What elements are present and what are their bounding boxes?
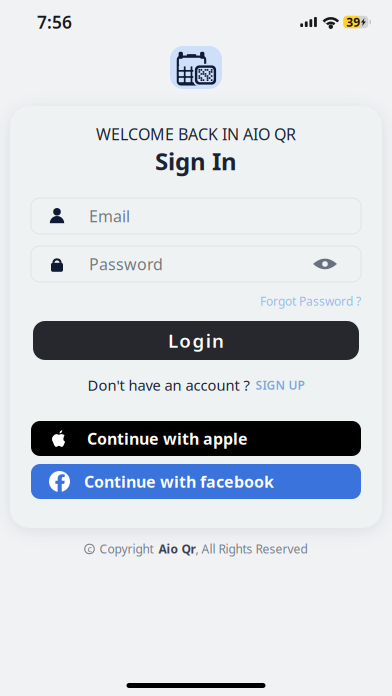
staticText: Copyright: [99, 541, 153, 557]
staticText: L: [168, 328, 178, 353]
staticText: n: [212, 328, 224, 353]
staticText: WELCOME BACK IN AIO QR: [96, 123, 296, 145]
staticText: Continue with facebook: [84, 471, 274, 492]
button[interactable]: SIGN UP: [255, 377, 304, 393]
staticText: 39: [346, 14, 360, 30]
button[interactable]: Forgot Password ?: [31, 282, 361, 312]
button[interactable]: Continue with facebook: [31, 464, 361, 499]
staticText: o: [179, 328, 191, 353]
staticText: Continue with apple: [87, 428, 248, 449]
staticText: g: [192, 328, 204, 353]
button[interactable]: L: [33, 321, 359, 360]
staticText: , All Rights Reserved: [195, 541, 307, 557]
staticText: Aio Qr: [158, 541, 195, 557]
staticText: Email: [89, 205, 130, 227]
staticText: c: [87, 542, 91, 555]
staticText: Sign In: [155, 145, 237, 177]
staticText: Password: [89, 253, 163, 275]
staticText: i: [206, 328, 211, 353]
staticText: Don't have an account ?: [87, 375, 249, 395]
staticText: Forgot Password ?: [260, 293, 361, 309]
staticText: SIGN UP: [255, 377, 304, 393]
staticText: 7:56: [37, 10, 72, 33]
button[interactable]: Continue with apple: [31, 421, 361, 456]
